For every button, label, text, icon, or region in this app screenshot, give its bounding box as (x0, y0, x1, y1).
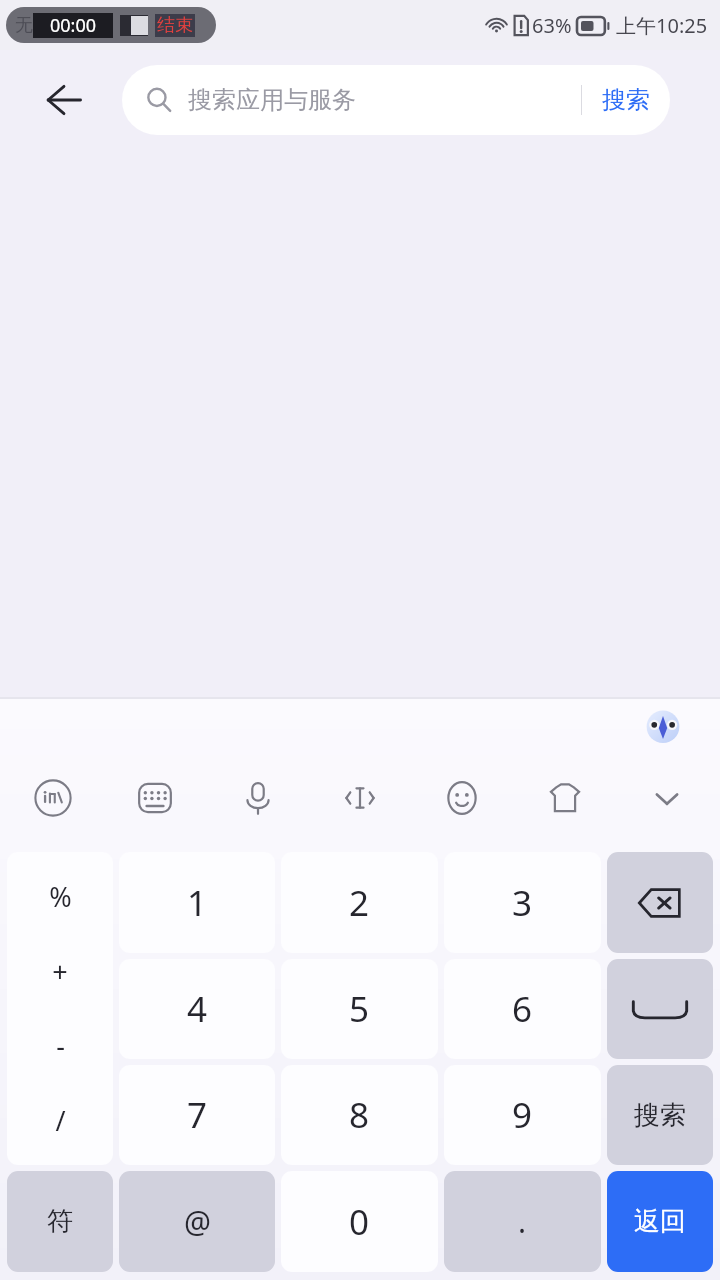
staticText: 搜索 (634, 1099, 686, 1132)
button[interactable]: 3 (444, 852, 601, 953)
staticText: 7 (187, 1091, 208, 1139)
staticText: 结束 (157, 14, 193, 37)
staticText: 5 (349, 985, 370, 1033)
button[interactable]: 搜索应用与服务 (122, 65, 670, 135)
button[interactable]: 搜索 (582, 65, 670, 135)
button[interactable]: Period (444, 1171, 601, 1272)
button[interactable]: Ongoing call, tap to return (6, 7, 216, 43)
staticText: 6 (512, 985, 533, 1033)
button[interactable]: 4 (119, 959, 275, 1059)
button[interactable]: 8 (281, 1065, 438, 1165)
button[interactable]: 6 (444, 959, 601, 1059)
button[interactable]: Back (38, 74, 90, 126)
staticText: 9 (512, 1091, 533, 1139)
button[interactable]: 1 (119, 852, 275, 953)
button[interactable]: Return (607, 1171, 713, 1272)
staticText: 无 (15, 14, 33, 37)
button[interactable]: Emoji (433, 769, 491, 827)
staticText: 8 (349, 1091, 370, 1139)
staticText: 3 (512, 879, 533, 927)
button[interactable]: 2 (281, 852, 438, 953)
staticText: - (56, 1027, 65, 1064)
button[interactable]: 7 (119, 1065, 275, 1165)
staticText: 返回 (634, 1205, 686, 1238)
staticText: 4 (187, 985, 208, 1033)
staticText: 1 (187, 879, 208, 927)
staticText: @ (184, 1201, 211, 1242)
button[interactable]: Input method logo (24, 769, 82, 827)
button[interactable]: 0 (281, 1171, 438, 1272)
staticText: . (518, 1201, 527, 1242)
staticText: 63% (532, 12, 572, 39)
button[interactable]: 9 (444, 1065, 601, 1165)
staticText: 0 (349, 1198, 370, 1246)
button[interactable]: Cursor control (331, 769, 389, 827)
button[interactable]: Keyboard skins (536, 769, 594, 827)
button[interactable]: Backspace (607, 852, 713, 953)
button[interactable]: Switch keyboard layout (126, 769, 184, 827)
staticText: 搜索 (602, 85, 650, 115)
staticText: 00:00 (50, 13, 97, 38)
button[interactable]: 5 (281, 959, 438, 1059)
button[interactable]: At sign (119, 1171, 275, 1272)
staticText: % (49, 878, 72, 915)
staticText: 上午10:25 (616, 12, 708, 39)
staticText: 搜索应用与服务 (188, 85, 356, 115)
staticText: + (52, 953, 68, 990)
button[interactable]: Symbol keyboard (7, 1171, 113, 1272)
staticText: 2 (349, 879, 370, 927)
button[interactable]: Voice input (229, 769, 287, 827)
button[interactable]: Input method assistant (644, 707, 682, 745)
button[interactable]: Symbols percent plus minus slash (7, 852, 113, 1165)
staticText: / (55, 1102, 66, 1139)
staticText: 符 (47, 1205, 73, 1238)
button[interactable]: Hide keyboard (638, 769, 696, 827)
button[interactable]: Space (607, 959, 713, 1059)
button[interactable]: Search (607, 1065, 713, 1165)
